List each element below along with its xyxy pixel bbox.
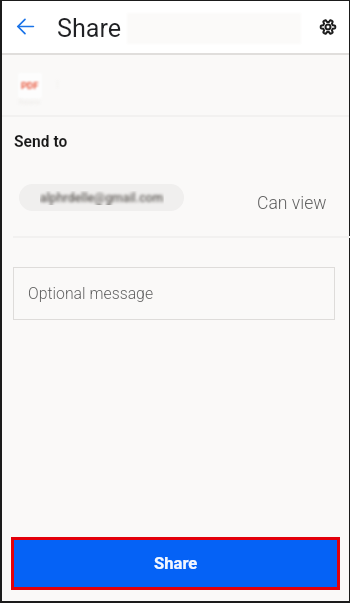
staticText: PDF [21,80,39,91]
button[interactable]: Settings [311,10,344,43]
button[interactable]: Back [9,10,42,43]
button[interactable]: Optional message [13,267,335,320]
staticText: Optional message [28,284,154,303]
button[interactable]: PDF attachment [18,73,42,98]
button[interactable]: Can view [257,193,327,214]
button[interactable]: Share [14,540,337,587]
staticText: alphrdelle@gmail.com [40,191,164,205]
staticText: Share [57,14,122,44]
staticText: Can view [257,193,327,214]
button[interactable]: Recipient email [19,184,184,211]
staticText: Send to [14,133,68,151]
staticText: Share [154,554,198,573]
